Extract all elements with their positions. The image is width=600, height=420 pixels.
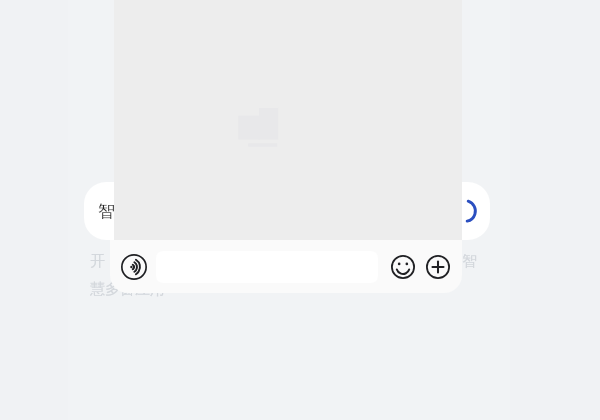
button[interactable]: Voice input [119, 252, 149, 282]
staticText: 慧多窗应用 [90, 280, 165, 299]
staticText: 智 [98, 201, 115, 222]
button[interactable]: Emoji [388, 252, 418, 282]
button[interactable]: More options [423, 252, 453, 282]
staticText: 开 [90, 252, 105, 271]
button[interactable]: 智 [84, 182, 490, 240]
staticText: 智 [462, 252, 477, 271]
